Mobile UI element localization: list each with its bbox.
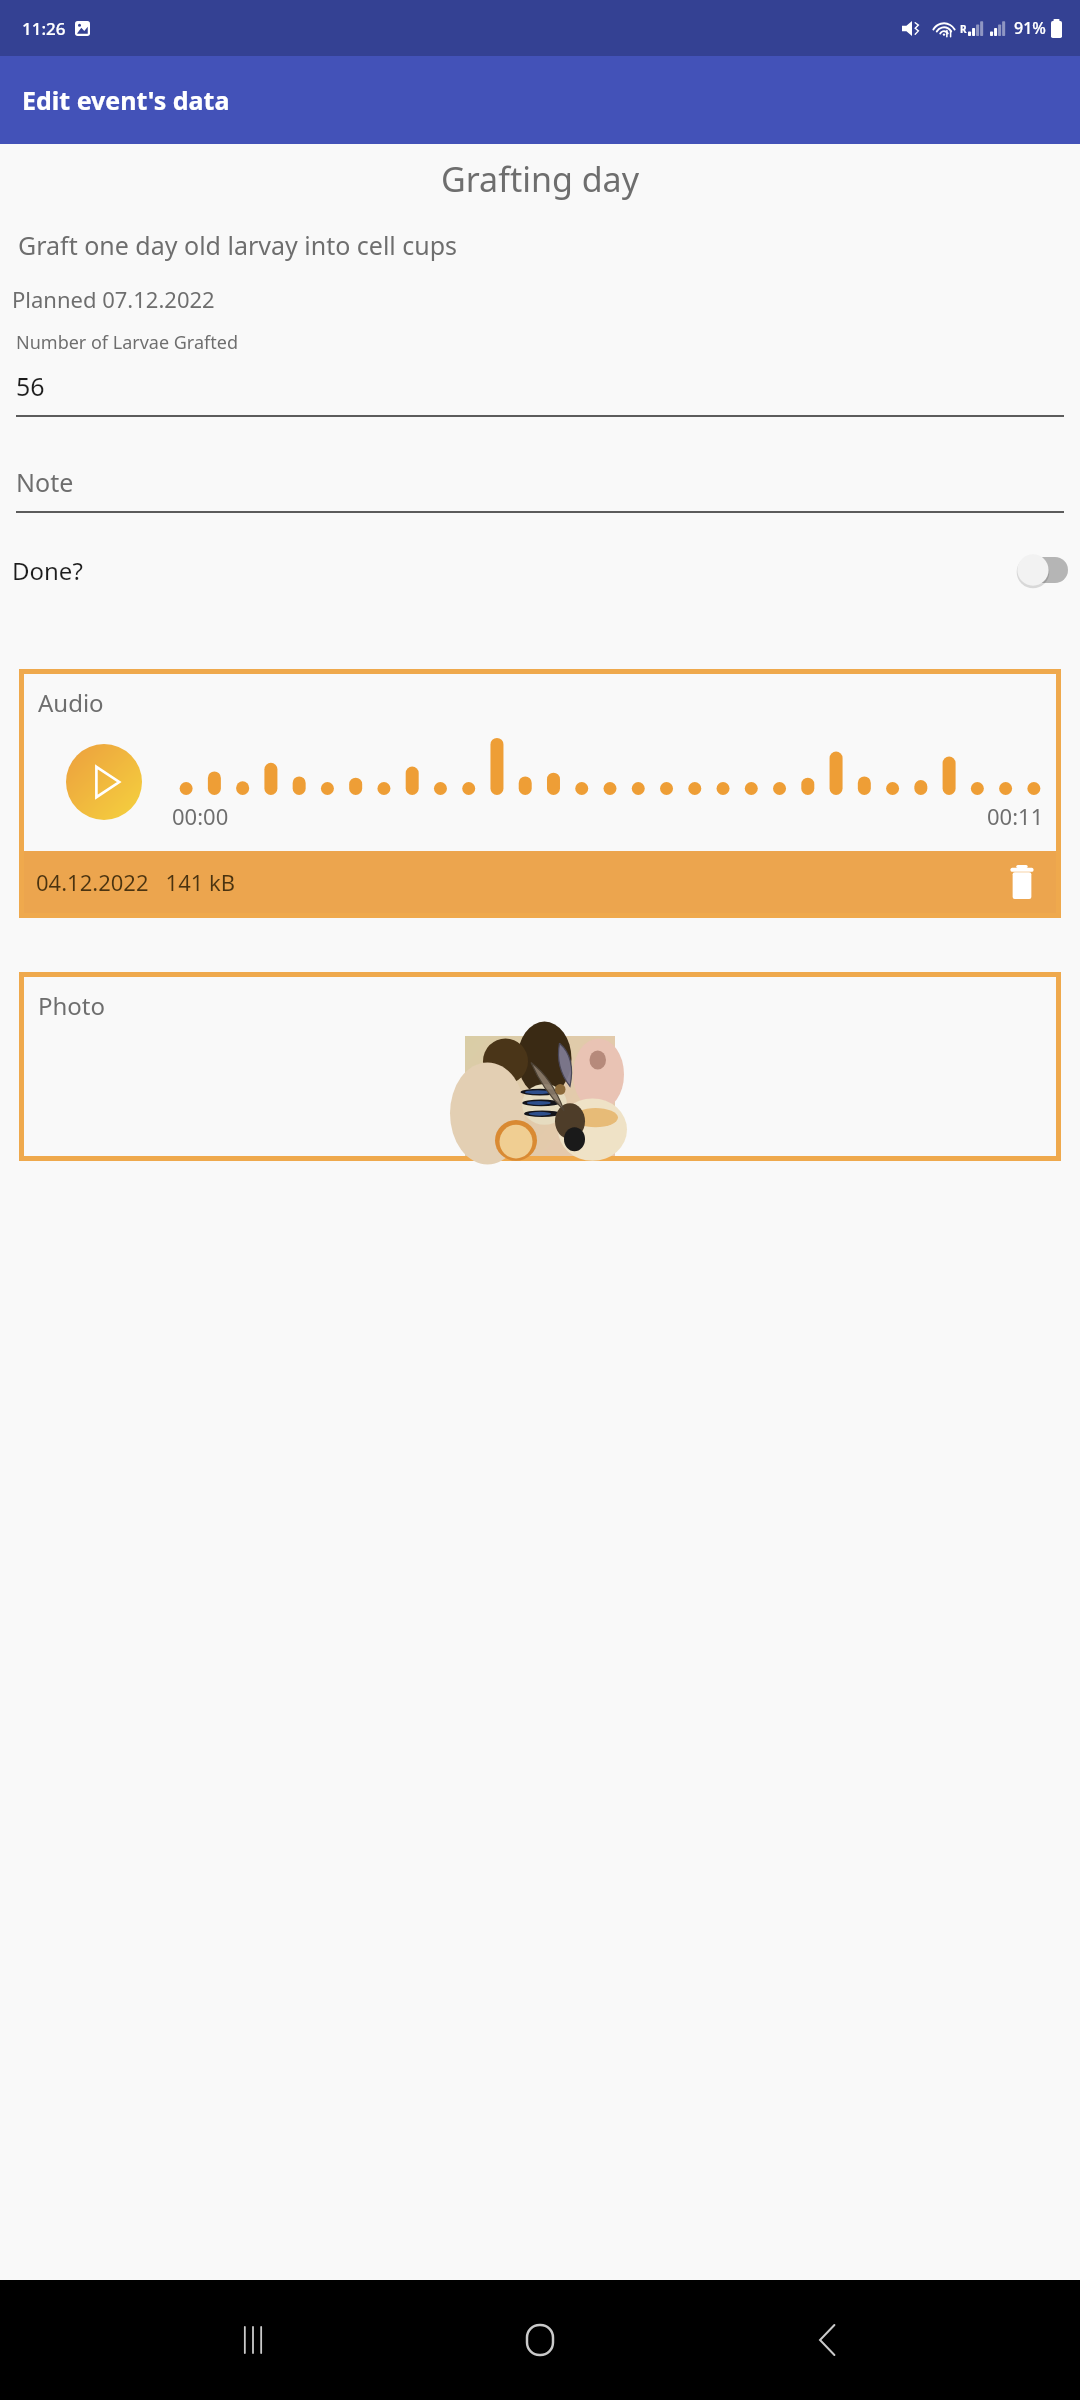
button[interactable]: Back bbox=[793, 2305, 863, 2375]
staticText: R bbox=[960, 22, 967, 36]
button[interactable]: Edit event's data bbox=[0, 56, 1080, 144]
staticText: Edit event's data bbox=[22, 83, 230, 117]
button[interactable]: Recent apps bbox=[218, 2305, 288, 2375]
staticText: Grafting day bbox=[0, 156, 1080, 202]
button[interactable]: 04.12.2022 141 kB bbox=[36, 851, 1044, 913]
button[interactable]: Note bbox=[16, 465, 1064, 513]
staticText: 00:00 bbox=[172, 801, 229, 831]
button[interactable]: Delete audio bbox=[1000, 860, 1044, 904]
staticText: Note bbox=[16, 465, 74, 499]
staticText: 91% bbox=[1014, 17, 1046, 39]
button[interactable]: 56 bbox=[16, 369, 1064, 417]
staticText: Graft one day old larvay into cell cups bbox=[18, 228, 1080, 262]
button[interactable]: Done? bbox=[12, 541, 1068, 599]
staticText: Number of Larvae Grafted bbox=[16, 330, 238, 355]
button[interactable]: Home bbox=[505, 2305, 575, 2375]
staticText: Planned 07.12.2022 bbox=[12, 284, 215, 314]
staticText: Audio bbox=[38, 686, 104, 719]
staticText: Done? bbox=[12, 554, 83, 587]
button[interactable]: Play audio bbox=[66, 744, 142, 820]
staticText: 00:11 bbox=[987, 801, 1044, 831]
staticText: 11:26 bbox=[22, 17, 66, 40]
button[interactable]: Photo bbox=[24, 977, 1056, 1156]
staticText: Photo bbox=[38, 989, 106, 1022]
staticText: 56 bbox=[16, 369, 45, 403]
staticText: 04.12.2022 141 kB bbox=[36, 867, 236, 897]
button[interactable]: Audio bbox=[24, 674, 1056, 851]
